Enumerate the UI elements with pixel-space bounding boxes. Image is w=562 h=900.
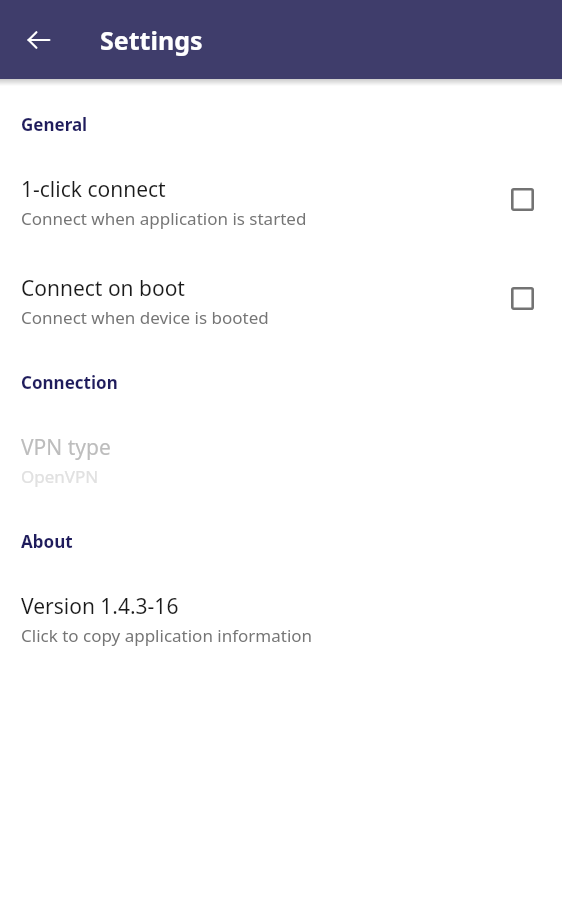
button[interactable]: Connect on boot bbox=[0, 274, 562, 329]
button[interactable]: Toggle Connect on boot bbox=[504, 280, 540, 316]
staticText: Connect when device is booted bbox=[21, 306, 269, 329]
button[interactable]: Back bbox=[12, 13, 66, 67]
staticText: Connection bbox=[21, 371, 118, 394]
staticText: 1-click connect bbox=[21, 175, 166, 204]
staticText: Connect on boot bbox=[21, 274, 185, 303]
button[interactable]: Version 1.4.3-16 bbox=[0, 592, 562, 647]
staticText: General bbox=[21, 113, 88, 136]
staticText: Settings bbox=[100, 23, 203, 57]
staticText: About bbox=[21, 530, 73, 553]
staticText: VPN type bbox=[21, 433, 111, 462]
staticText: OpenVPN bbox=[21, 465, 99, 488]
staticText: Connect when application is started bbox=[21, 207, 307, 230]
button[interactable]: Toggle 1-click connect bbox=[504, 181, 540, 217]
staticText: Version 1.4.3-16 bbox=[21, 592, 179, 621]
button[interactable]: VPN type bbox=[0, 433, 562, 488]
button[interactable]: 1-click connect bbox=[0, 175, 562, 230]
staticText: Click to copy application information bbox=[21, 624, 313, 647]
